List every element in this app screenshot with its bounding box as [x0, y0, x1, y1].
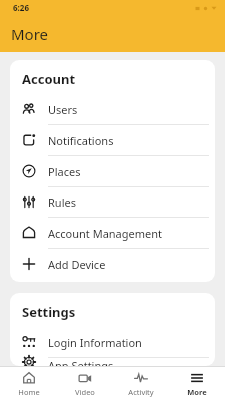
staticText: Rules: [48, 195, 76, 210]
staticText: Notifications: [48, 133, 114, 148]
staticText: 6:26: [13, 2, 29, 13]
button[interactable]: Users: [10, 94, 215, 124]
button[interactable]: More: [169, 367, 225, 400]
staticText: More: [187, 387, 207, 397]
button[interactable]: Login Information: [10, 327, 215, 357]
staticText: Users: [48, 102, 78, 117]
staticText: Video: [75, 387, 95, 397]
staticText: Activity: [128, 387, 154, 397]
button[interactable]: Rules: [10, 187, 215, 217]
staticText: App Settings: [48, 358, 114, 366]
button[interactable]: App Settings: [10, 358, 215, 366]
button[interactable]: Account Management: [10, 218, 215, 248]
staticText: Settings: [22, 303, 76, 321]
button[interactable]: Activity: [113, 367, 169, 400]
button[interactable]: Video: [57, 367, 113, 400]
staticText: More: [11, 24, 49, 44]
button[interactable]: Places: [10, 156, 215, 186]
staticText: Places: [48, 164, 81, 179]
staticText: Account Management: [48, 226, 163, 241]
staticText: Home: [18, 387, 40, 397]
button[interactable]: Notifications: [10, 125, 215, 155]
button[interactable]: Home: [0, 367, 57, 400]
button[interactable]: Add Device: [10, 249, 215, 279]
staticText: Add Device: [48, 257, 106, 272]
staticText: Account: [22, 70, 76, 88]
staticText: Login Information: [48, 335, 142, 350]
